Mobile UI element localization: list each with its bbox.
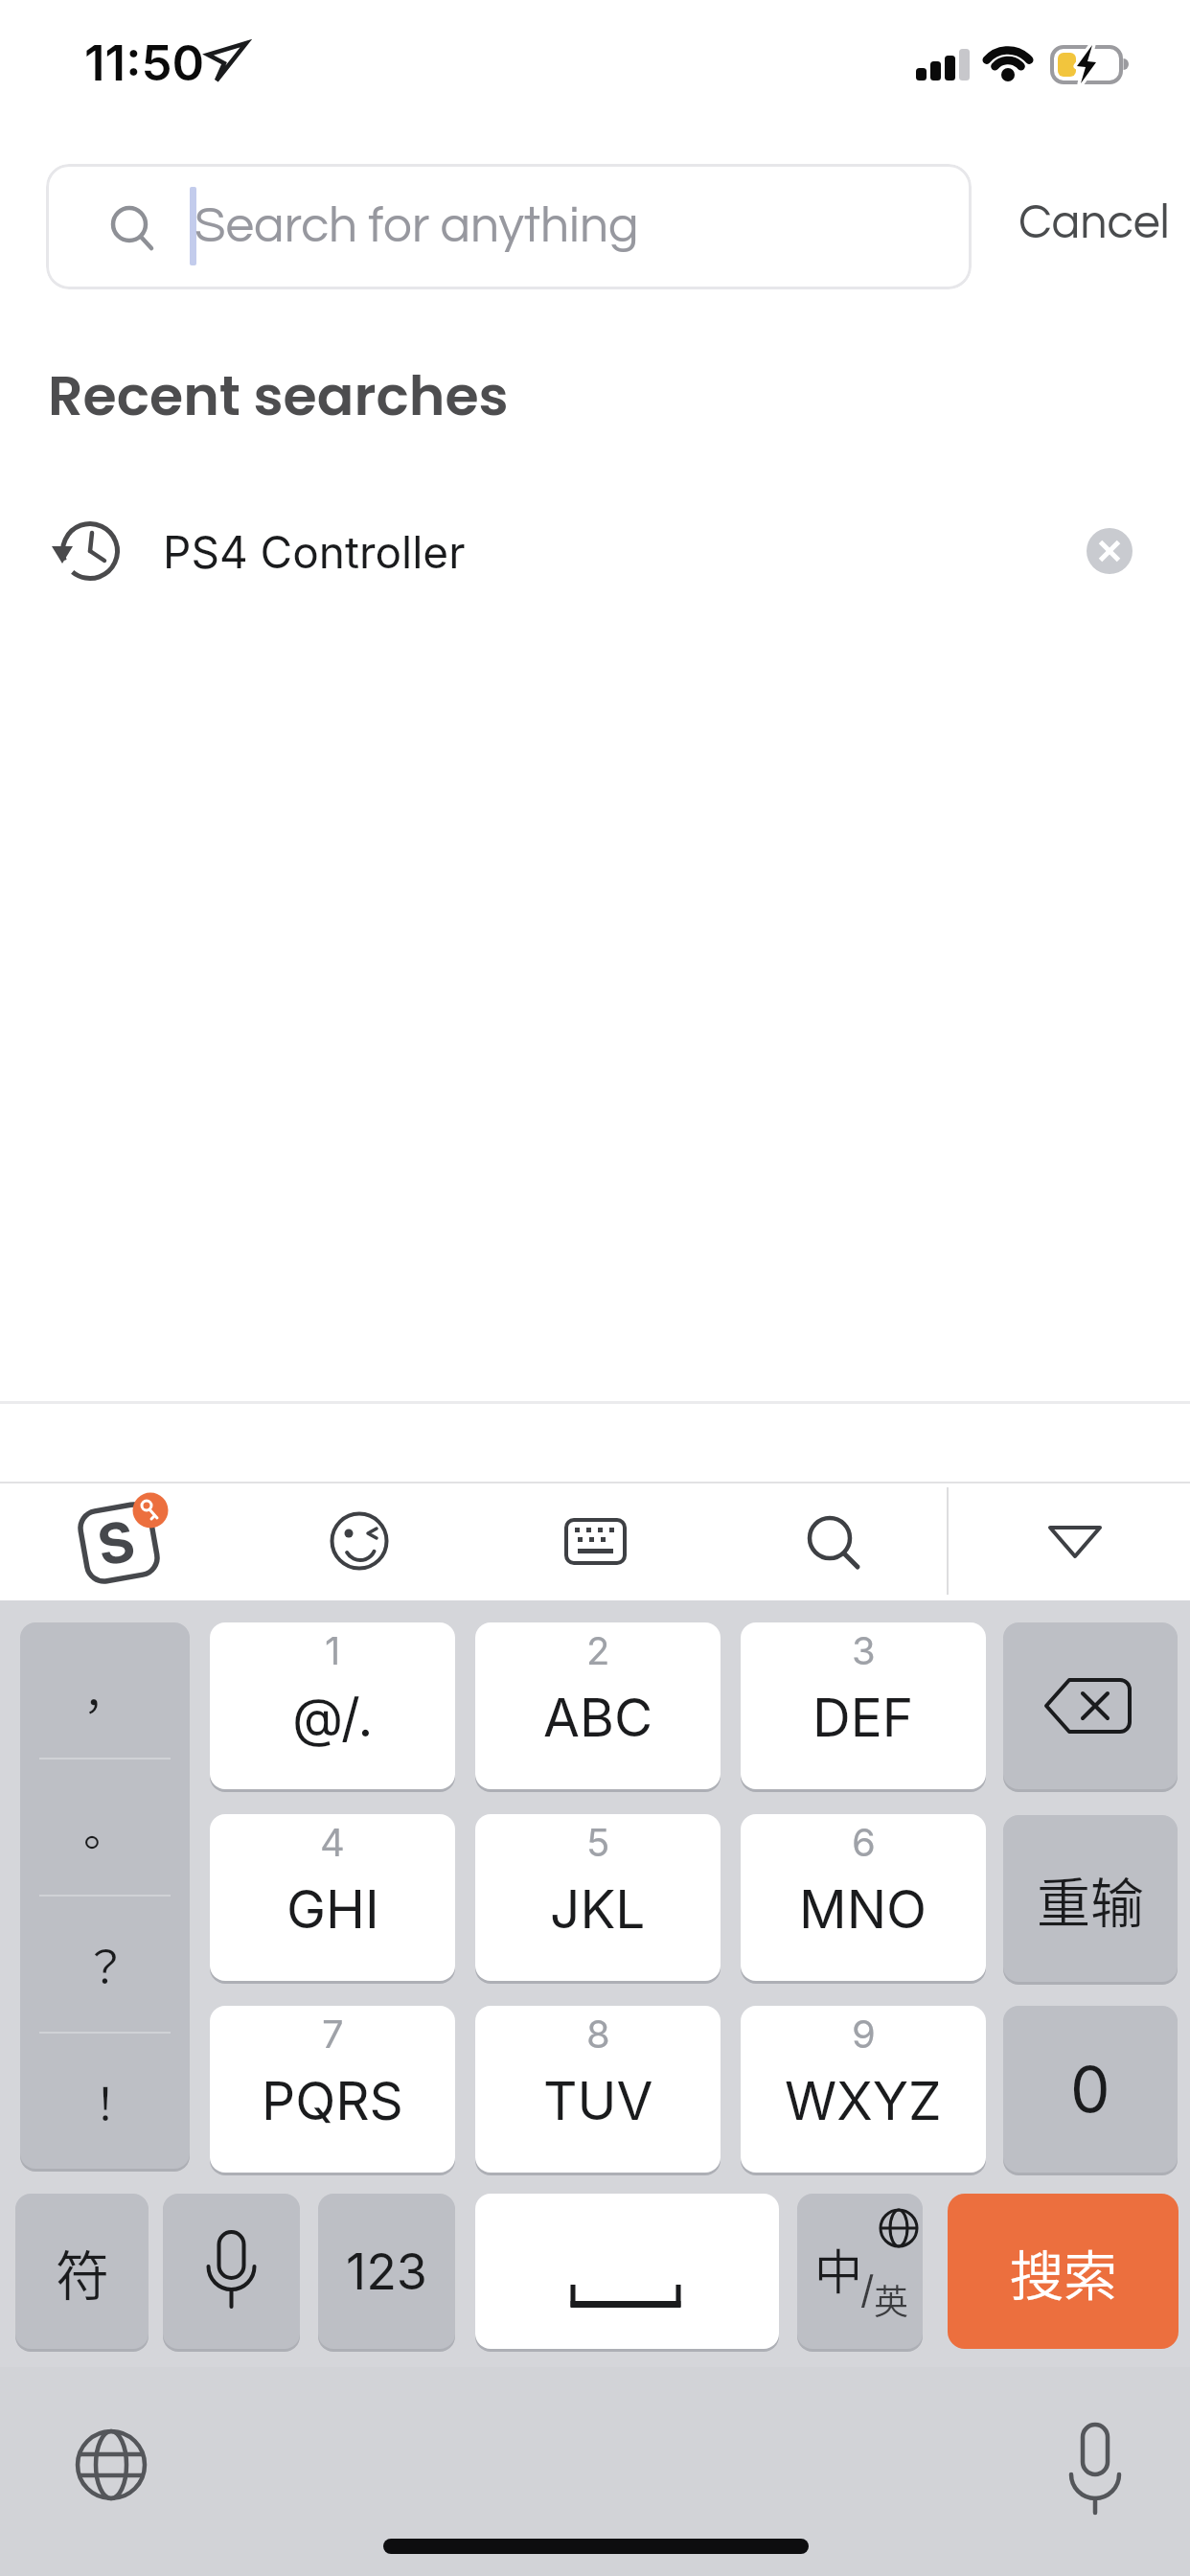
staticText: @/. [292,1686,374,1750]
staticText: 重输 [1037,1860,1144,1938]
staticText: 5 [586,1819,610,1865]
staticText: PQRS [262,2069,403,2133]
button[interactable]: Cancel [996,164,1190,289]
button[interactable] [1087,528,1133,574]
staticText: 2 [586,1627,610,1673]
button[interactable]: 5 [475,1814,721,1981]
staticText: 123 [346,2242,427,2302]
button[interactable]: Search for anything [46,164,972,289]
staticText: 6 [852,1819,876,1865]
button[interactable]: 3 [741,1622,986,1789]
staticText: 9 [852,2011,876,2057]
button[interactable]: PS4 Controller [0,489,1190,613]
button[interactable]: 9 [741,2006,986,2173]
staticText: S [92,1507,140,1579]
button[interactable]: 符 [15,2194,149,2349]
staticText: DEF [812,1686,914,1750]
button[interactable]: 8 [475,2006,721,2173]
staticText: Cancel [1018,198,1170,248]
staticText: JKL [550,1877,646,1942]
button[interactable]: 重输 [1003,1815,1178,1982]
staticText: 中 [814,2234,862,2303]
staticText: GHI [286,1877,379,1942]
button[interactable] [163,2194,300,2349]
button[interactable]: 中 [797,2194,923,2349]
staticText: ABC [543,1686,653,1750]
staticText: 英 [874,2274,909,2324]
staticText: 符 [56,2233,109,2311]
button[interactable] [1003,1622,1178,1789]
staticText: / [860,2266,875,2312]
button[interactable] [774,1483,889,1599]
button[interactable]: 6 [741,1814,986,1981]
staticText: 搜索 [1010,2233,1117,2311]
button[interactable] [302,1483,417,1599]
staticText: ， [83,1658,127,1722]
staticText: MNO [799,1877,927,1942]
button[interactable] [538,1483,652,1599]
staticText: 。 [83,1795,127,1859]
button[interactable]: S [59,1483,178,1599]
staticText: Search for anything [195,200,639,253]
staticText: WXYZ [785,2069,942,2133]
staticText: TUV [543,2069,653,2133]
staticText: ？ [83,1932,127,1996]
button[interactable] [1018,1483,1133,1599]
staticText: Recent searches [48,357,509,434]
button[interactable]: 1 [210,1622,455,1789]
staticText: 1 [325,1627,341,1673]
button[interactable]: 123 [318,2194,455,2349]
button[interactable]: 7 [210,2006,455,2173]
staticText: 3 [852,1627,876,1673]
button[interactable]: 搜索 [948,2194,1179,2349]
button[interactable]: ， [20,1622,190,2169]
staticText: 8 [586,2011,610,2057]
button[interactable]: 0 [1003,2006,1178,2173]
button[interactable]: 4 [210,1814,455,1981]
staticText: ！ [83,2069,127,2133]
staticText: 0 [1070,2051,1110,2127]
staticText: 4 [320,1819,345,1865]
button[interactable] [54,2407,169,2522]
button[interactable]: 2 [475,1622,721,1789]
button[interactable] [475,2194,779,2349]
staticText: 7 [322,2011,344,2057]
staticText: 11:50 [84,34,205,93]
staticText: PS4 Controller [163,525,466,579]
button[interactable] [1038,2405,1153,2520]
